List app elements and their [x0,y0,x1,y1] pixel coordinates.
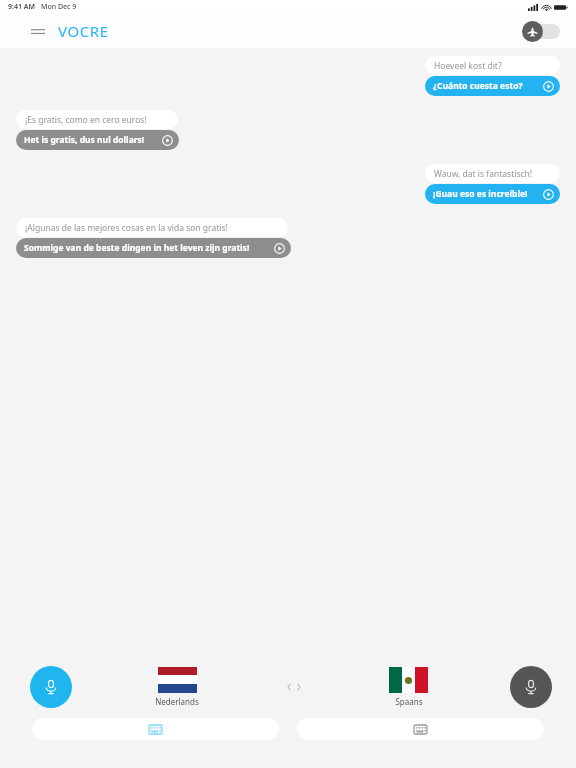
staticText: VOCRE [58,21,109,41]
button[interactable]: Menu [26,19,50,43]
staticText: Het is gratis, dus nul dollars! [24,134,145,146]
button[interactable]: ¡Es gratis, como en cero euros! [16,110,560,150]
button[interactable]: Airplane mode toggle [522,20,562,42]
staticText: 9:41 AM [8,2,35,12]
button[interactable]: Wauw, dat is fantastisch! [16,164,560,204]
button[interactable]: Nederlands [149,667,205,707]
staticText: Spaans [395,696,423,707]
button[interactable]: Record Spanish [510,666,552,708]
staticText: ¡Algunas de las mejores cosas en la vida… [25,222,228,234]
button[interactable]: Hoeveel kost dit? [16,56,560,96]
button[interactable]: Keyboard input [297,718,544,740]
staticText: Hoeveel kost dit? [434,60,502,72]
button[interactable]: Record Dutch [30,666,72,708]
staticText: ¡Es gratis, como en cero euros! [25,114,147,126]
button[interactable]: Spaans [383,667,434,707]
button[interactable]: Swap languages [281,677,307,697]
staticText: Nederlands [155,696,199,707]
staticText: Mon Dec 9 [41,2,77,12]
staticText: Sommige van de beste dingen in het leven… [24,242,250,254]
staticText: Wauw, dat is fantastisch! [434,168,533,180]
staticText: ¡Guau eso es increíble! [433,188,528,200]
button[interactable]: ¡Algunas de las mejores cosas en la vida… [16,218,560,258]
staticText: ¿Cuánto cuesta esto? [433,80,523,92]
button[interactable]: Keyboard input [32,718,279,740]
